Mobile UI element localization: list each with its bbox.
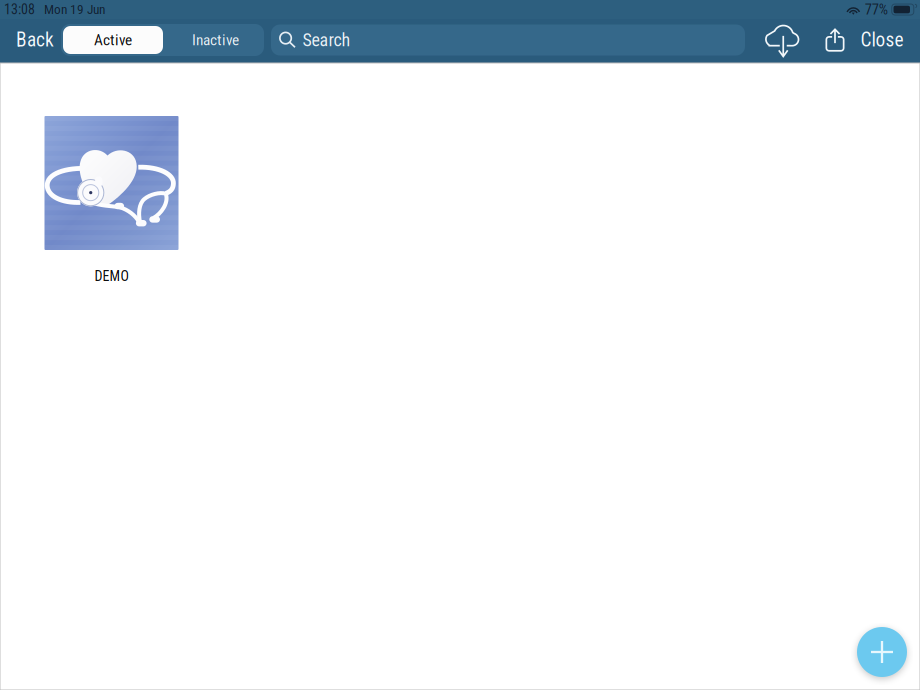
staticText: 77% <box>865 1 888 18</box>
staticText: Active <box>94 31 132 49</box>
button[interactable]: Close <box>852 18 912 62</box>
staticText: 13:08 <box>4 1 35 18</box>
staticText: Back <box>16 29 54 51</box>
button[interactable]: Inactive <box>166 26 265 53</box>
staticText: Search <box>302 29 350 51</box>
staticText: DEMO <box>94 268 128 284</box>
button[interactable]: Search <box>271 24 745 55</box>
staticText: Close <box>860 29 903 51</box>
button[interactable]: Back <box>7 18 63 62</box>
staticText: Inactive <box>192 31 239 49</box>
button[interactable]: Download <box>756 18 806 62</box>
button[interactable]: DEMO <box>27 116 195 292</box>
button[interactable]: Active <box>63 26 163 54</box>
staticText: Mon 19 Jun <box>44 2 105 17</box>
button[interactable]: Share <box>813 18 857 62</box>
button[interactable]: Add <box>857 627 907 677</box>
